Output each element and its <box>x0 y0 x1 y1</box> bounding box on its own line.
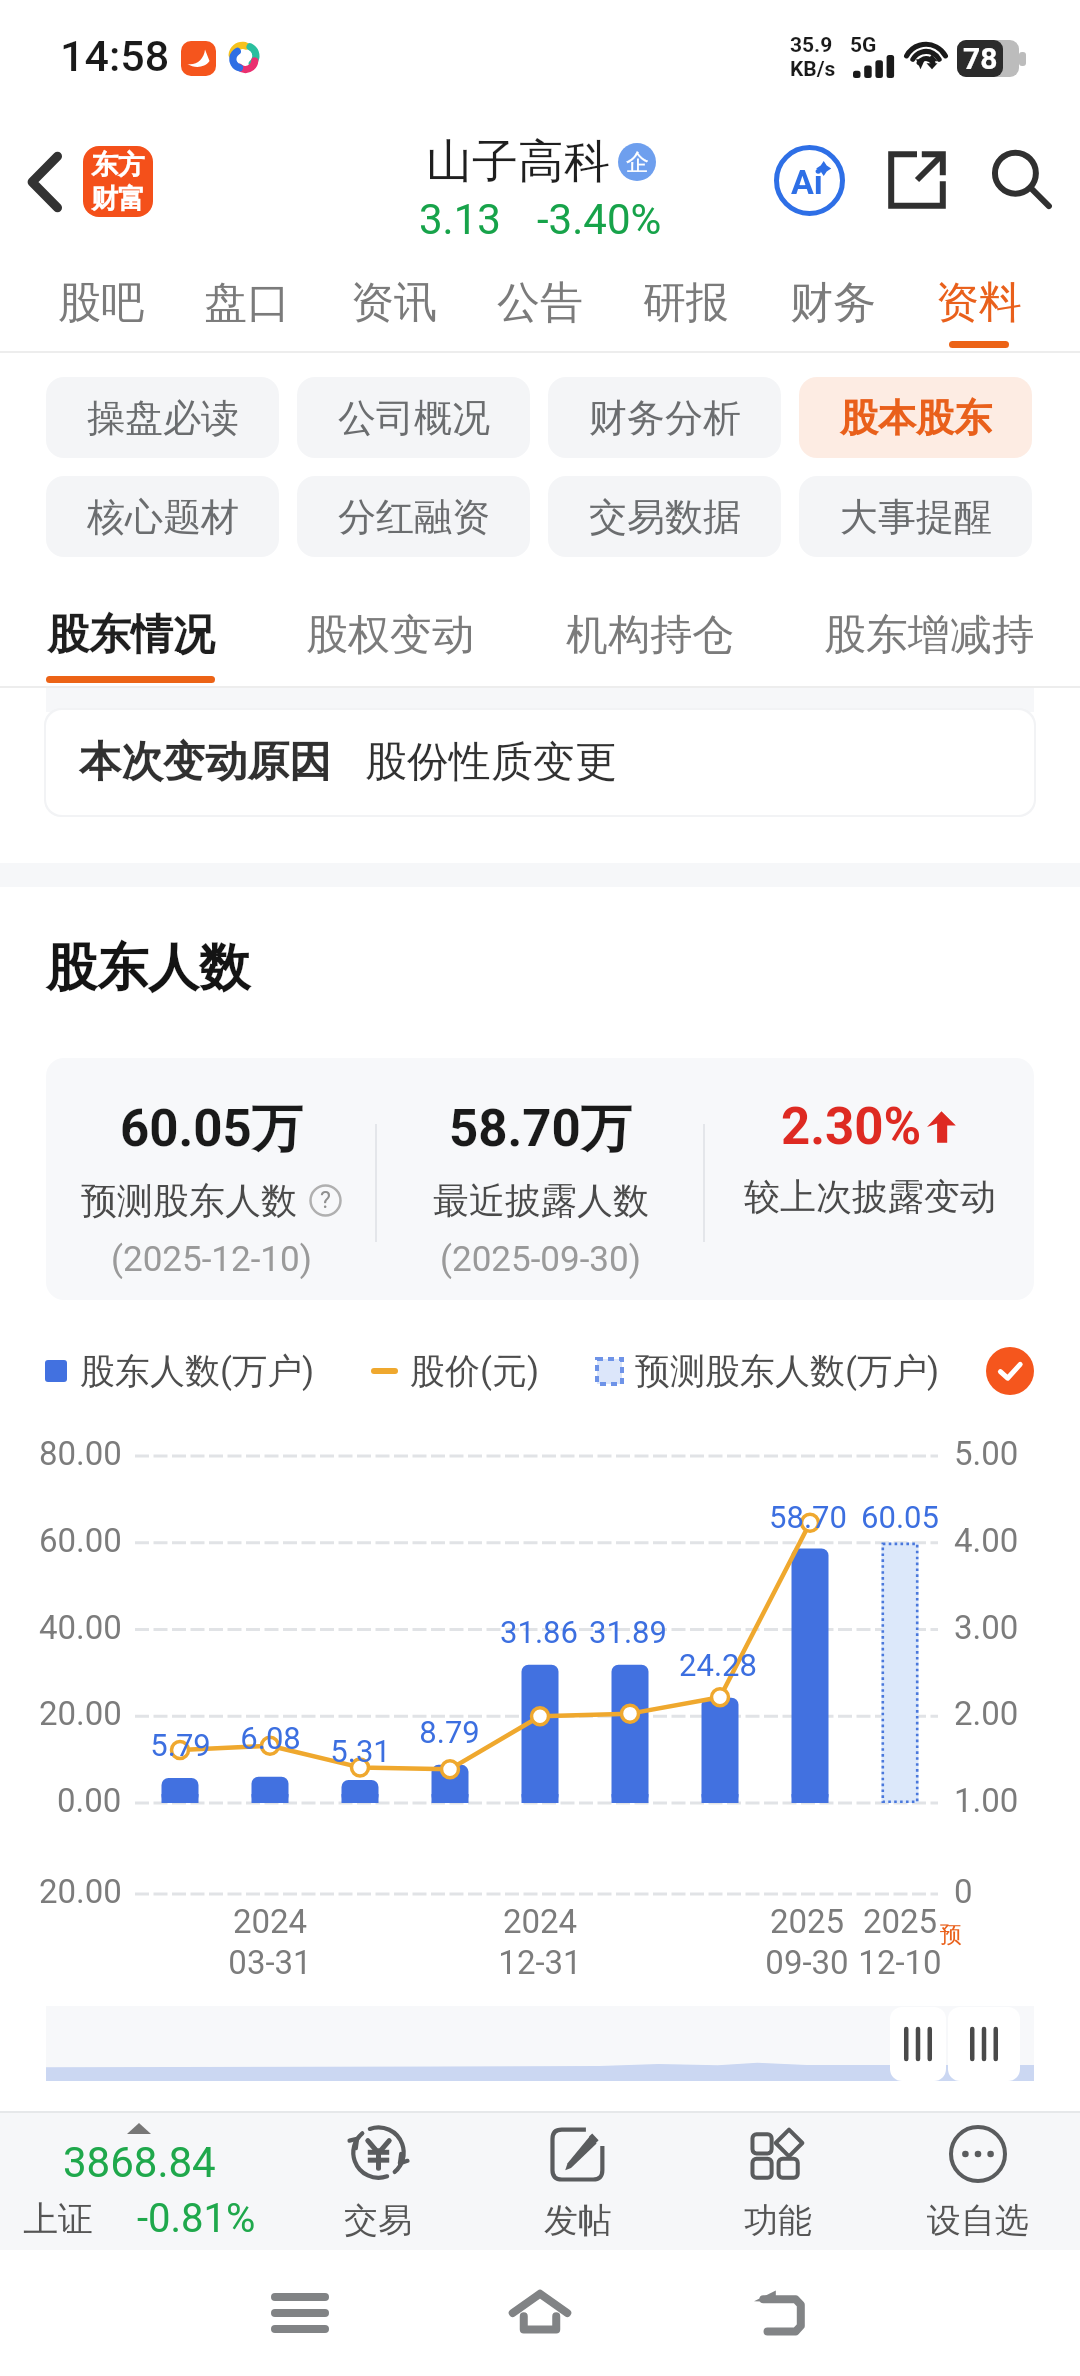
staticText: 0 <box>954 1872 973 1911</box>
button[interactable]: 资讯 <box>351 276 437 348</box>
button[interactable]: 操盘必读 <box>46 377 279 458</box>
staticText: 8.79 <box>419 1714 480 1750</box>
staticText: 20.00 <box>39 1872 122 1911</box>
button[interactable]: 股吧 <box>58 276 144 348</box>
staticText: 58.70 <box>769 1499 847 1535</box>
staticText: 78 <box>963 41 998 76</box>
button[interactable]: 大事提醒 <box>799 476 1032 557</box>
staticText: 财富 <box>91 182 145 216</box>
staticText: 财务分析 <box>589 394 741 442</box>
staticText: 功能 <box>744 2199 812 2242</box>
staticText: 股本股东 <box>840 394 992 442</box>
staticText: 14:58 <box>60 31 170 81</box>
staticText: 预测股东人数 <box>81 1178 297 1223</box>
staticText: -0.81% <box>137 2195 256 2242</box>
button[interactable]: 功能 <box>678 2113 878 2250</box>
button[interactable]: Share <box>877 140 957 220</box>
button[interactable]: 资料 <box>936 276 1022 348</box>
staticText: 股权变动 <box>306 609 474 662</box>
staticText: (2025-12-10) <box>111 1239 312 1280</box>
button[interactable]: 财务 <box>790 276 876 348</box>
staticText: 交易数据 <box>589 493 741 541</box>
staticText: 5.00 <box>954 1434 1019 1473</box>
button[interactable]: Home <box>496 2269 584 2357</box>
button[interactable]: 分红融资 <box>297 476 530 557</box>
button[interactable]: 本次变动原因 <box>46 710 1034 815</box>
staticText: -3.40% <box>537 195 662 244</box>
staticText: 35.9 <box>790 33 833 58</box>
staticText: 预 <box>940 1921 962 1949</box>
staticText: 大事提醒 <box>840 493 992 541</box>
staticText: 31.89 <box>589 1614 667 1650</box>
staticText: 股东人数(万户) <box>80 1349 315 1393</box>
button[interactable]: 股东情况 <box>46 609 215 683</box>
staticText: 较上次披露变动 <box>744 1174 996 1219</box>
staticText: (2025-09-30) <box>440 1239 641 1280</box>
staticText: 60.05 <box>861 1499 939 1535</box>
button[interactable]: 东方财富 <box>83 146 153 217</box>
staticText: 1.00 <box>954 1781 1019 1820</box>
staticText: 交易 <box>344 2199 412 2242</box>
staticText: 股东增减持 <box>824 609 1034 662</box>
staticText: 公告 <box>497 276 583 330</box>
staticText: 2024 03-31 <box>228 1902 312 1982</box>
staticText: 60.00 <box>39 1521 122 1560</box>
staticText: 2.30% <box>781 1097 922 1157</box>
button[interactable]: 公告 <box>497 276 583 348</box>
staticText: 20.00 <box>39 1694 122 1733</box>
button[interactable]: 股本股东 <box>799 377 1032 458</box>
button[interactable]: 交易数据 <box>548 476 781 557</box>
button[interactable]: 交易 <box>278 2113 478 2250</box>
button[interactable]: 核心题材 <box>46 476 279 557</box>
staticText: 5G <box>850 33 877 58</box>
staticText: ? <box>320 1187 331 1214</box>
staticText: 2.00 <box>954 1694 1019 1733</box>
staticText: 股吧 <box>58 276 144 330</box>
button[interactable]: Recent apps <box>256 2269 344 2357</box>
staticText: 企 <box>626 148 649 177</box>
button[interactable]: 股权变动 <box>305 609 474 683</box>
button[interactable]: 股东增减持 <box>824 609 1034 683</box>
button[interactable]: 设自选 <box>878 2113 1078 2250</box>
button[interactable]: 机构持仓 <box>565 609 734 683</box>
staticText: 60.05万 <box>120 1097 303 1161</box>
button[interactable]: 公司概况 <box>297 377 530 458</box>
staticText: 58.70万 <box>449 1097 632 1161</box>
staticText: 3.13 <box>419 195 501 244</box>
staticText: 4.00 <box>954 1521 1019 1560</box>
button[interactable]: Back <box>6 144 82 220</box>
button[interactable]: 财务分析 <box>548 377 781 458</box>
staticText: 2025 12-10 <box>858 1902 942 1982</box>
staticText: 2025 09-30 <box>765 1902 849 1982</box>
staticText: 核心题材 <box>87 493 239 541</box>
staticText: 0.00 <box>57 1781 122 1820</box>
staticText: 分红融资 <box>338 493 490 541</box>
staticText: 研报 <box>643 276 729 330</box>
button[interactable]: Range handle <box>890 2007 946 2081</box>
staticText: 发帖 <box>544 2199 612 2242</box>
staticText: 5.79 <box>150 1727 211 1763</box>
staticText: 资讯 <box>351 276 437 330</box>
button[interactable]: Selected <box>986 1347 1034 1395</box>
staticText: 31.86 <box>500 1614 578 1650</box>
staticText: 操盘必读 <box>87 394 239 442</box>
button[interactable]: 盘口 <box>204 276 290 348</box>
button[interactable]: 3868.84 <box>0 2113 278 2250</box>
staticText: 设自选 <box>927 2199 1029 2242</box>
button[interactable]: Range handle <box>948 2007 1020 2081</box>
button[interactable]: 研报 <box>643 276 729 348</box>
staticText: 3868.84 <box>63 2138 216 2187</box>
staticText: Ai <box>791 162 823 202</box>
staticText: 盘口 <box>204 276 290 330</box>
button[interactable]: 发帖 <box>478 2113 678 2250</box>
staticText: 40.00 <box>39 1608 122 1647</box>
staticText: 2024 12-31 <box>498 1902 582 1982</box>
staticText: 5.31 <box>330 1733 391 1769</box>
staticText: 机构持仓 <box>566 609 734 662</box>
button[interactable]: AI assistant <box>764 135 854 225</box>
staticText: 24.28 <box>679 1647 757 1683</box>
button[interactable]: Back <box>736 2269 824 2357</box>
staticText: 财务 <box>790 276 876 330</box>
staticText: 6.08 <box>240 1720 301 1756</box>
button[interactable]: Search <box>981 140 1061 220</box>
